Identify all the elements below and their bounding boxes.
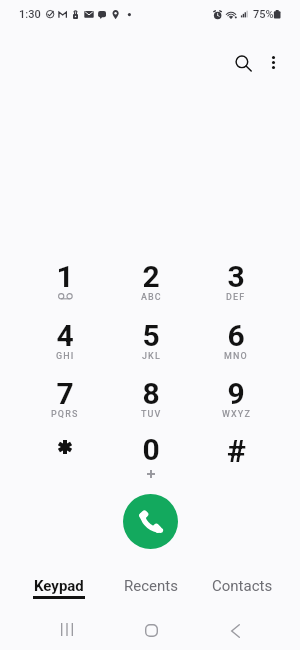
button[interactable]: 0 — [109, 429, 193, 481]
button[interactable]: # — [194, 429, 278, 481]
staticText: Recents — [124, 577, 178, 595]
staticText: WXYZ — [222, 409, 251, 420]
button[interactable]: Search — [226, 45, 262, 81]
staticText: Keypad — [34, 577, 84, 595]
staticText: PQRS — [51, 409, 79, 420]
button[interactable]: Back — [212, 610, 258, 650]
staticText: 8 — [142, 376, 160, 411]
staticText: 75% — [253, 8, 274, 21]
button[interactable] — [23, 429, 107, 481]
button[interactable]: Home — [128, 609, 174, 650]
button[interactable]: Keypad — [14, 566, 104, 606]
staticText: 4 — [56, 318, 74, 353]
button[interactable]: Call — [123, 494, 178, 549]
staticText: GHI — [56, 351, 75, 362]
button[interactable]: 3 — [194, 256, 278, 308]
staticText: 0 — [142, 432, 160, 467]
button[interactable]: 7 — [23, 373, 107, 425]
staticText: TUV — [141, 409, 162, 420]
button[interactable]: 1 — [23, 256, 107, 308]
staticText: JKL — [142, 351, 161, 362]
button[interactable]: Contacts — [197, 566, 287, 606]
staticText: ABC — [141, 292, 162, 303]
staticText: 3 — [227, 259, 245, 294]
button[interactable]: Recent apps — [44, 608, 90, 650]
button[interactable]: 2 — [109, 256, 193, 308]
button[interactable]: 4 — [23, 315, 107, 367]
staticText: 1:30 — [19, 8, 41, 21]
staticText: Contacts — [212, 577, 273, 595]
staticText: MNO — [224, 351, 248, 362]
button[interactable]: 6 — [194, 315, 278, 367]
staticText: 5 — [142, 318, 160, 353]
staticText: 2 — [142, 259, 160, 294]
button[interactable]: Recents — [106, 566, 196, 606]
staticText: 6 — [227, 318, 245, 353]
staticText: DEF — [226, 292, 246, 303]
staticText: 1 — [56, 259, 74, 294]
button[interactable]: 5 — [109, 315, 193, 367]
button[interactable]: 8 — [109, 373, 193, 425]
staticText: # — [227, 432, 246, 470]
button[interactable]: More options — [257, 46, 289, 78]
staticText: 7 — [56, 376, 74, 411]
button[interactable]: 9 — [194, 373, 278, 425]
staticText: 9 — [227, 376, 245, 411]
